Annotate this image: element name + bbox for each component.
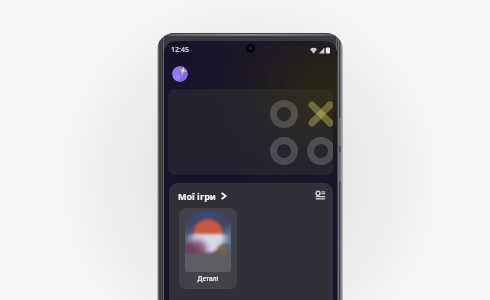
button[interactable]: Switch to list view [315, 190, 326, 201]
staticText: Мої ігри [178, 190, 216, 202]
button[interactable]: Tic Tac Toe game [168, 89, 333, 175]
button[interactable]: Мої ігри [178, 189, 228, 203]
button[interactable]: Profile [172, 66, 188, 82]
button[interactable]: Pokemon GO details [179, 208, 237, 289]
staticText: Деталі [179, 274, 237, 283]
staticText: 12:45 [171, 45, 189, 55]
